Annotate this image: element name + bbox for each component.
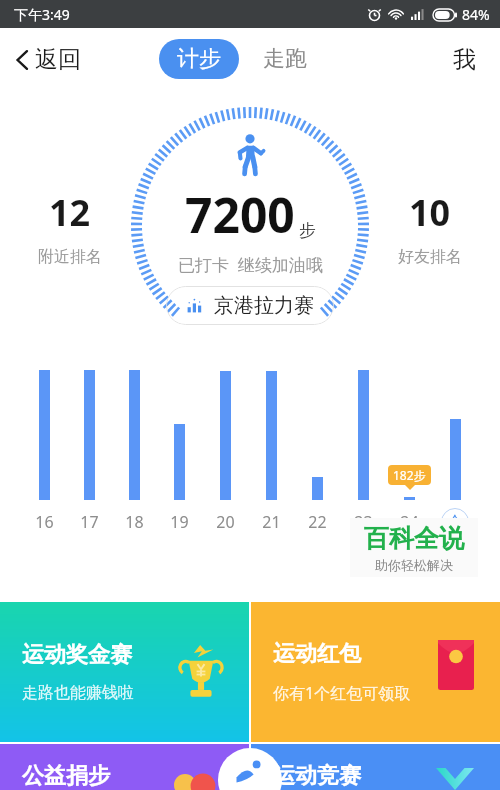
staticText: 下午3:49 (14, 5, 70, 24)
button[interactable]: 运动 (218, 748, 282, 790)
button[interactable] (432, 370, 478, 500)
staticText: 10 (409, 188, 451, 237)
staticText: 84% (462, 5, 490, 24)
button[interactable]: 我 (447, 41, 482, 78)
staticText: 今 (448, 513, 462, 531)
staticText: 182步 (393, 467, 426, 483)
staticText: 走路也能赚钱啦 (22, 683, 134, 703)
staticText: 步 (299, 220, 316, 241)
staticText: 已打卡 继续加油哦 (178, 253, 323, 276)
button[interactable] (202, 370, 248, 500)
staticText: 运动竞赛 (273, 762, 361, 790)
staticText: 17 (80, 511, 99, 533)
staticText: 公益捐步 (22, 762, 110, 790)
button[interactable] (248, 370, 294, 500)
staticText: 23 (354, 511, 373, 533)
staticText: 18 (125, 511, 144, 533)
button[interactable] (157, 370, 202, 500)
button[interactable]: 运动竞赛 (251, 744, 500, 790)
staticText: 助你轻松解决 (375, 557, 453, 573)
staticText: 附近排名 (38, 247, 102, 267)
staticText: 12 (49, 188, 91, 237)
button[interactable]: 运动奖金赛 (0, 602, 249, 742)
staticText: 运动红包 (273, 640, 361, 668)
button[interactable]: 返回 (10, 41, 85, 78)
button[interactable]: 运动红包 (251, 602, 500, 742)
staticText: 22 (308, 511, 327, 533)
button[interactable]: 12 (38, 188, 102, 267)
staticText: 计步 (177, 45, 221, 73)
staticText: 21 (262, 511, 281, 533)
button[interactable]: 走跑 (255, 39, 315, 79)
staticText: 16 (35, 511, 54, 533)
staticText: 运动奖金赛 (22, 641, 132, 669)
button[interactable]: 公益捐步 (0, 744, 249, 790)
button[interactable]: 今 (441, 508, 469, 536)
button[interactable] (112, 370, 157, 500)
staticText: 19 (170, 511, 189, 533)
button[interactable]: 182步 (386, 370, 432, 500)
button[interactable]: 京港拉力赛 (166, 286, 334, 325)
button[interactable] (340, 370, 386, 500)
staticText: 20 (216, 511, 235, 533)
staticText: 百科全说 (364, 523, 464, 554)
staticText: 24 (400, 511, 419, 533)
staticText: 京港拉力赛 (214, 293, 314, 318)
staticText: 我 (453, 45, 476, 74)
staticText: 走跑 (263, 45, 307, 73)
button[interactable] (67, 370, 112, 500)
staticText: 7200 (185, 182, 295, 247)
button[interactable]: 计步 (159, 39, 239, 79)
button[interactable]: 10 (398, 188, 462, 267)
staticText: 返回 (35, 45, 81, 74)
button[interactable] (294, 370, 340, 500)
staticText: 好友排名 (398, 247, 462, 267)
staticText: 你有1个红包可领取 (273, 682, 411, 704)
button[interactable] (22, 370, 67, 500)
